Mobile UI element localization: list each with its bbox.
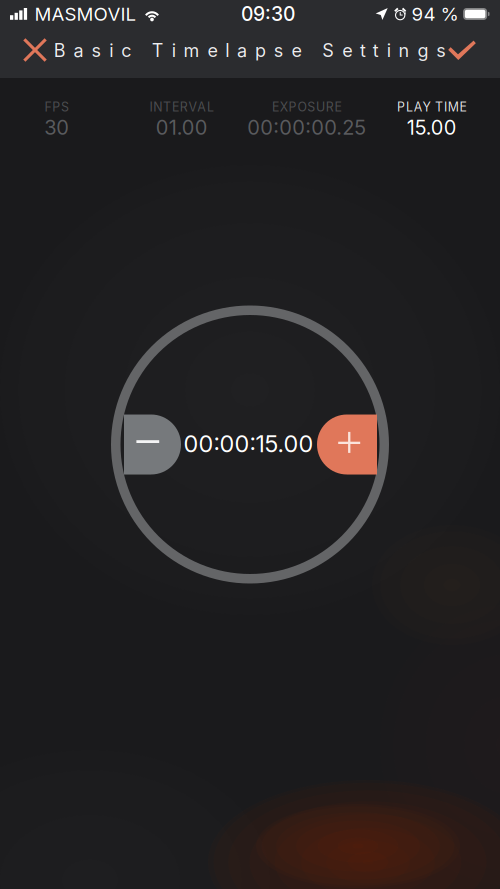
- staticText: EXPOSURE: [272, 99, 342, 114]
- staticText: 01.00: [156, 115, 208, 140]
- staticText: Basic Timelapse Settings: [54, 40, 446, 61]
- staticText: INTERVAL: [149, 99, 214, 114]
- staticText: PLAY TIME: [397, 99, 466, 114]
- staticText: FPS: [44, 99, 69, 114]
- staticText: 30: [44, 115, 69, 140]
- button[interactable]: Close: [13, 28, 57, 72]
- button[interactable]: Increase play time: [317, 414, 377, 474]
- staticText: 00:00:15.00: [184, 429, 314, 458]
- button[interactable]: Decrease play time: [124, 414, 181, 474]
- staticText: MASMOVIL: [34, 3, 136, 25]
- staticText: 15.00: [407, 115, 457, 140]
- staticText: 09:30: [241, 2, 295, 26]
- button[interactable]: Save: [440, 28, 484, 72]
- staticText: 00:00:00.25: [247, 115, 366, 140]
- staticText: 94 %: [411, 3, 458, 25]
